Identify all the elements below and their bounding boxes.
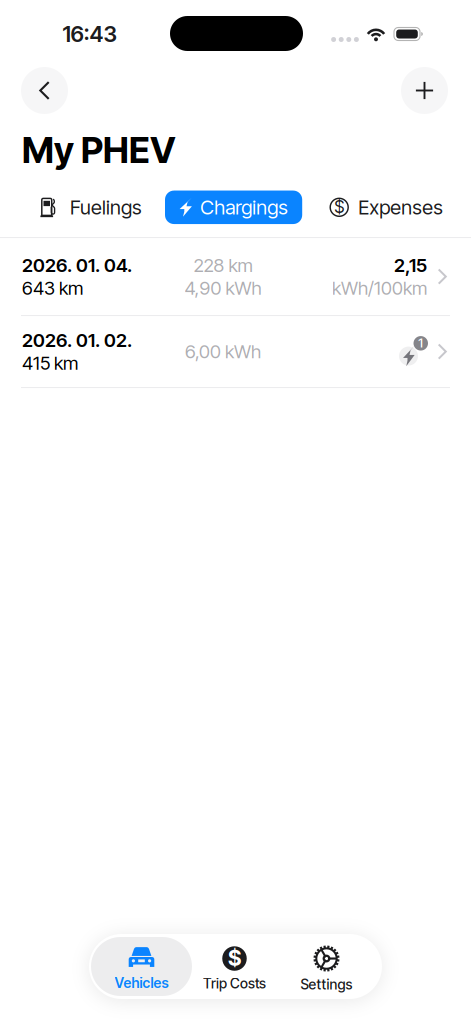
button[interactable]: 2026. 01. 02. <box>0 316 471 387</box>
button[interactable]: Back <box>21 67 68 114</box>
staticText: Fuelings <box>70 195 142 219</box>
staticText: 2026. 01. 02. <box>22 329 132 352</box>
staticText: $ <box>334 196 344 217</box>
staticText: Expenses <box>358 195 443 219</box>
button[interactable]: Settings <box>277 937 376 996</box>
staticText: 6,00 kWh <box>185 340 261 363</box>
button[interactable]: Add <box>401 67 448 114</box>
staticText: 2026. 01. 04. <box>22 254 132 277</box>
staticText: 16:43 <box>62 21 117 47</box>
staticText: kWh/100km <box>332 277 427 299</box>
staticText: 415 km <box>22 352 78 374</box>
staticText: 643 km <box>22 277 83 299</box>
staticText: Trip Costs <box>203 975 266 992</box>
staticText: 228 km <box>193 254 252 277</box>
button[interactable]: $ <box>192 937 277 996</box>
staticText: 1 <box>418 335 423 350</box>
staticText: My PHEV <box>22 128 176 172</box>
staticText: 2,15 <box>394 254 427 277</box>
button[interactable]: Vehicles <box>91 937 192 996</box>
button[interactable]: 2026. 01. 04. <box>0 238 471 315</box>
staticText: Vehicles <box>114 974 168 991</box>
staticText: Chargings <box>200 195 288 219</box>
button[interactable]: Chargings <box>165 191 302 224</box>
staticText: 4,90 kWh <box>184 277 261 299</box>
button[interactable]: Fuelings <box>40 191 142 224</box>
staticText: Settings <box>300 976 352 993</box>
button[interactable]: $ <box>330 191 443 224</box>
staticText: $ <box>228 945 241 971</box>
